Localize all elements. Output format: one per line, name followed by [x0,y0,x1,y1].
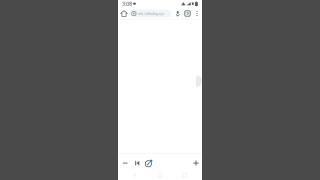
button[interactable]: Home [118,8,129,19]
button[interactable]: More options [192,8,201,19]
button[interactable]: Home [153,170,167,180]
button[interactable]: Recent apps [177,170,191,180]
button[interactable]: Back [128,170,142,180]
staticText: 9 [186,11,188,16]
staticText: 3:08 [122,0,132,7]
button[interactable]: Zoom in [190,158,201,169]
button[interactable]: Account [143,158,155,169]
staticText: abc.inflodng.xyz [137,11,164,16]
button[interactable]: Switch tabs [182,8,192,19]
button[interactable]: Voice search [173,8,182,19]
button[interactable]: Address bar [129,9,171,17]
button[interactable]: Previous [131,158,143,169]
button[interactable]: Zoom out [119,158,131,169]
